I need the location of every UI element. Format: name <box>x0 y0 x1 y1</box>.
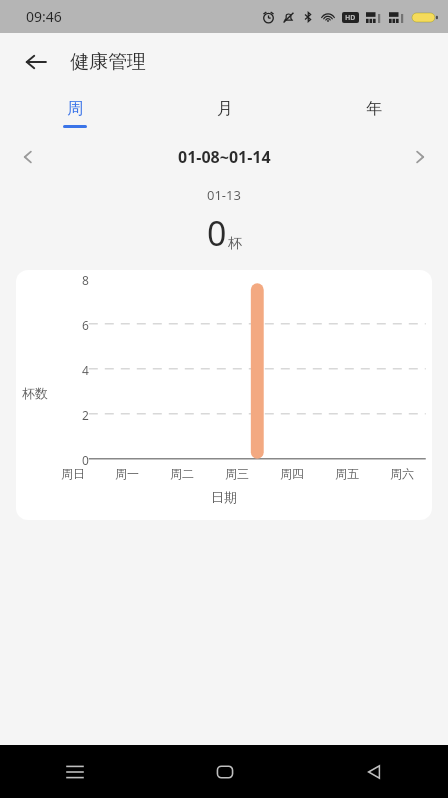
staticText: 8 <box>82 272 89 288</box>
staticText: 周二 <box>170 466 194 481</box>
button[interactable]: Recent apps <box>0 745 150 798</box>
staticText: 周六 <box>390 466 414 481</box>
staticText: 09:46 <box>26 7 62 26</box>
staticText: 2 <box>82 407 89 423</box>
staticText: HD <box>345 13 356 23</box>
staticText: 杯数 <box>22 385 48 401</box>
staticText: 0 <box>207 210 227 256</box>
button[interactable]: 周 <box>0 90 150 136</box>
staticText: 杯 <box>228 235 242 253</box>
staticText: 周日 <box>61 466 85 481</box>
staticText: 周 <box>67 99 83 119</box>
staticText: 0 <box>82 452 89 468</box>
staticText: 日期 <box>211 489 237 505</box>
staticText: 4 <box>82 362 89 378</box>
button[interactable]: Next week <box>400 137 440 177</box>
staticText: 周四 <box>280 466 304 481</box>
button[interactable]: Back <box>299 745 448 798</box>
staticText: 周一 <box>115 466 139 481</box>
button[interactable]: 月 <box>150 90 299 136</box>
staticText: 周三 <box>225 466 249 481</box>
button[interactable]: Previous week <box>8 137 48 177</box>
staticText: 01-08~01-14 <box>178 146 271 168</box>
staticText: 健康管理 <box>70 50 146 74</box>
staticText: 年 <box>366 99 382 119</box>
staticText: 01-13 <box>207 186 241 204</box>
button[interactable]: 年 <box>299 90 448 136</box>
staticText: 6 <box>82 317 89 333</box>
button[interactable]: Home <box>150 745 299 798</box>
button[interactable]: Back <box>14 40 58 84</box>
staticText: 周五 <box>335 466 359 481</box>
staticText: 月 <box>217 99 233 119</box>
